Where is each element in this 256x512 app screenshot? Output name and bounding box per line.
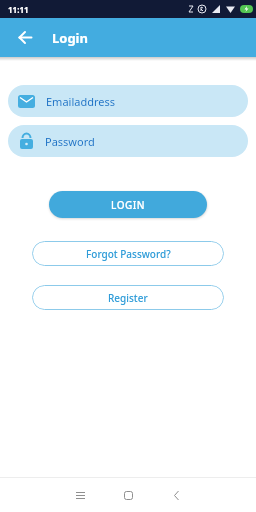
staticText: Forgot Password? xyxy=(86,247,171,261)
staticText: Login xyxy=(52,29,88,47)
staticText: Register xyxy=(108,291,148,305)
staticText: 11:11 xyxy=(8,4,29,15)
button[interactable]: Register xyxy=(32,285,224,310)
button[interactable] xyxy=(63,478,97,512)
button[interactable] xyxy=(0,18,44,57)
staticText: Emailaddress xyxy=(46,94,116,109)
button[interactable]: LOGIN xyxy=(49,191,207,218)
staticText: LOGIN xyxy=(111,198,146,212)
button[interactable] xyxy=(111,478,145,512)
button[interactable] xyxy=(159,478,193,512)
button[interactable]: Password xyxy=(8,125,248,157)
button[interactable]: Forgot Password? xyxy=(32,241,224,266)
staticText: Password xyxy=(45,134,95,149)
button[interactable]: Emailaddress xyxy=(8,85,248,117)
